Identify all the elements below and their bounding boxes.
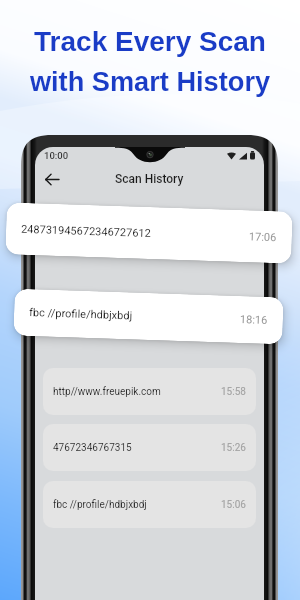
staticText: 15:58 xyxy=(221,386,246,398)
button[interactable]: fbc //profile/hdbjxbdj xyxy=(43,481,256,528)
staticText: 15:06 xyxy=(221,499,246,511)
staticText: fbc //profile/hdbjxbdj xyxy=(29,306,133,322)
staticText: Scan History xyxy=(115,172,184,186)
button[interactable]: http//www.freuepik.com xyxy=(43,368,256,415)
staticText: 17:06 xyxy=(249,230,277,244)
button[interactable]: 47672346767315 xyxy=(43,424,256,471)
button[interactable]: 248731945672346727612 xyxy=(5,202,293,264)
button[interactable]: Back xyxy=(39,166,65,192)
staticText: 15:26 xyxy=(221,442,246,454)
button[interactable]: fbc //profile/hdbjxbdj xyxy=(13,289,284,344)
staticText: fbc //profile/hdbjxbdj xyxy=(53,499,147,511)
staticText: 10:00 xyxy=(44,150,69,161)
staticText: with Smart History xyxy=(0,66,300,96)
staticText: 18:16 xyxy=(240,313,268,327)
staticText: 47672346767315 xyxy=(53,442,132,454)
staticText: http//www.freuepik.com xyxy=(53,386,161,398)
staticText: Track Every Scan xyxy=(0,26,300,57)
staticText: 248731945672346727612 xyxy=(21,223,151,240)
